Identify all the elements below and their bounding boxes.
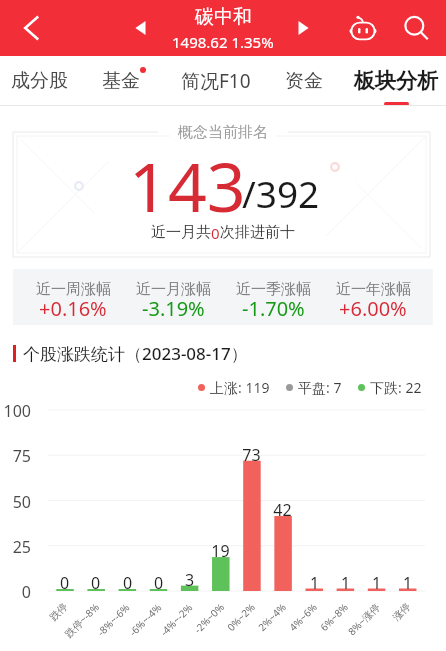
- button[interactable]: 近一月涨幅: [123, 269, 223, 325]
- staticText: +6.00%: [339, 295, 407, 322]
- button[interactable]: 板块分析: [353, 56, 439, 105]
- button[interactable]: 近一年涨幅: [323, 269, 423, 325]
- staticText: 简况F10: [181, 68, 251, 94]
- staticText: 100: [0, 400, 31, 422]
- staticText: -2%~0%: [191, 600, 227, 636]
- staticText: 近一季涨幅: [236, 280, 311, 299]
- staticText: 73: [235, 444, 268, 466]
- staticText: 19: [204, 540, 237, 562]
- staticText: 碳中和: [195, 5, 252, 29]
- staticText: 概念当前排名: [178, 123, 268, 142]
- staticText: 近一周涨幅: [36, 280, 111, 299]
- button[interactable]: Back: [0, 0, 56, 56]
- staticText: 6%~8%: [317, 600, 351, 634]
- staticText: 25: [0, 536, 31, 558]
- button[interactable]: AI assistant: [343, 8, 383, 48]
- staticText: 42: [266, 499, 299, 521]
- staticText: 1: [391, 572, 424, 594]
- staticText: -1.70%: [242, 295, 305, 322]
- staticText: 次排进前十: [220, 223, 295, 242]
- staticText: 1498.62 1.35%: [172, 32, 274, 52]
- staticText: 75: [0, 445, 31, 467]
- staticText: 涨停: [390, 600, 413, 623]
- button[interactable]: Previous sector: [126, 13, 156, 43]
- staticText: 板块分析: [354, 68, 438, 94]
- staticText: 0: [79, 572, 112, 594]
- button[interactable]: 资金: [261, 56, 347, 105]
- staticText: 1: [329, 572, 362, 594]
- staticText: 8%~涨停: [345, 600, 383, 638]
- button[interactable]: 近一季涨幅: [223, 269, 323, 325]
- button[interactable]: 成分股: [0, 56, 82, 105]
- staticText: 跌停: [47, 600, 70, 623]
- staticText: 1: [298, 572, 331, 594]
- staticText: 资金: [285, 69, 323, 93]
- staticText: 0: [142, 572, 175, 594]
- staticText: 3: [173, 569, 206, 591]
- staticText: -3.19%: [142, 295, 205, 322]
- staticText: 成分股: [11, 69, 68, 93]
- staticText: 基金: [102, 69, 140, 93]
- button[interactable]: 简况F10: [173, 56, 259, 105]
- staticText: 个股涨跌统计（2023-08-17）: [23, 342, 248, 365]
- staticText: -4%~-2%: [157, 600, 196, 639]
- staticText: 上涨: 119: [210, 378, 270, 396]
- staticText: 近一月共: [151, 223, 211, 242]
- staticText: 跌停~-8%: [62, 600, 102, 640]
- staticText: -8%~-6%: [94, 600, 133, 639]
- button[interactable]: 基金: [78, 56, 164, 105]
- staticText: 143: [129, 139, 246, 232]
- button[interactable]: 近一周涨幅: [23, 269, 123, 325]
- staticText: -6%~-4%: [126, 600, 165, 639]
- staticText: 平盘: 7: [298, 378, 342, 396]
- staticText: /392: [242, 168, 320, 218]
- staticText: 4%~6%: [286, 600, 320, 634]
- staticText: 1: [360, 572, 393, 594]
- staticText: 0: [111, 572, 144, 594]
- staticText: 0: [211, 223, 220, 243]
- staticText: 近一年涨幅: [336, 280, 411, 299]
- staticText: 2%~4%: [255, 600, 289, 634]
- button[interactable]: Search: [396, 8, 436, 48]
- staticText: 0%~2%: [224, 600, 258, 634]
- staticText: 近一月涨幅: [136, 280, 211, 299]
- button[interactable]: Next sector: [288, 13, 318, 43]
- staticText: 0: [0, 581, 31, 603]
- staticText: +0.16%: [39, 295, 107, 322]
- staticText: 下跌: 22: [370, 378, 422, 396]
- staticText: 0: [48, 572, 81, 594]
- staticText: 50: [0, 491, 31, 513]
